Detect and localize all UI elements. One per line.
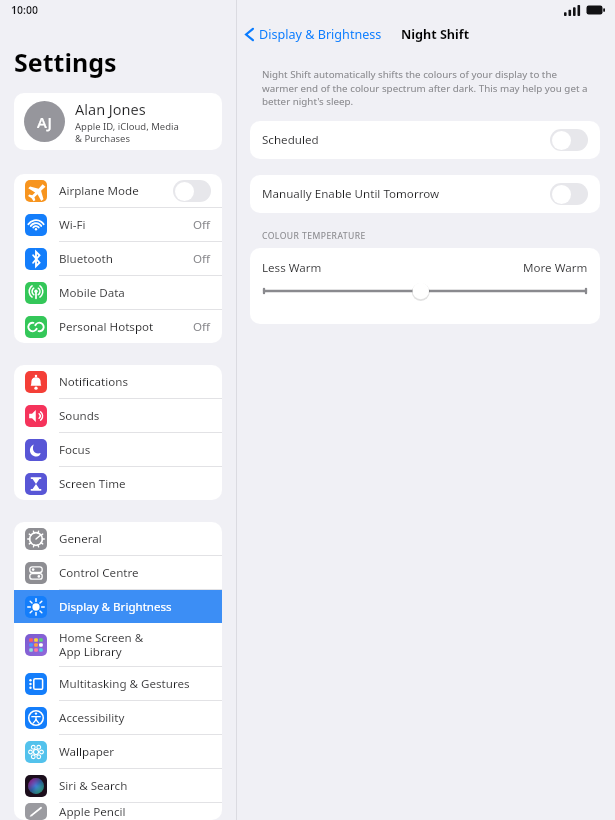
button[interactable]: Home Screen & App Library: [14, 623, 222, 666]
staticText: Off: [193, 251, 211, 267]
staticText: Scheduled: [262, 132, 550, 148]
button[interactable]: Sounds: [14, 399, 222, 432]
staticText: Screen Time: [59, 476, 211, 492]
staticText: Less Warm: [262, 260, 322, 276]
staticText: Alan Jones: [75, 99, 146, 119]
button[interactable]: Notifications: [14, 365, 222, 398]
staticText: More Warm: [523, 260, 588, 276]
button[interactable]: Multitasking & Gestures: [14, 667, 222, 700]
staticText: Wallpaper: [59, 744, 211, 760]
button[interactable]: Control Centre: [14, 556, 222, 589]
staticText: Control Centre: [59, 565, 211, 581]
button[interactable]: Focus: [14, 433, 222, 466]
staticText: Home Screen & App Library: [59, 630, 211, 659]
staticText: Notifications: [59, 374, 211, 390]
staticText: Off: [193, 217, 211, 233]
staticText: Mobile Data: [59, 285, 211, 301]
button[interactable]: Scheduled toggle: [550, 129, 588, 151]
button[interactable]: Apple Pencil: [14, 803, 222, 820]
button[interactable]: Bluetooth: [14, 242, 222, 275]
staticText: Off: [193, 319, 211, 335]
staticText: Personal Hotspot: [59, 319, 193, 335]
staticText: General: [59, 531, 211, 547]
button[interactable]: Airplane Mode: [14, 174, 222, 207]
staticText: Wi-Fi: [59, 217, 193, 233]
staticText: Apple ID, iCloud, Media & Purchases: [75, 120, 179, 145]
staticText: Focus: [59, 442, 211, 458]
staticText: 10:00: [11, 3, 38, 17]
button[interactable]: Wi-Fi: [14, 208, 222, 241]
button[interactable]: Screen Time: [14, 467, 222, 500]
staticText: Display & Brightness: [259, 26, 382, 43]
staticText: Siri & Search: [59, 778, 211, 794]
staticText: Bluetooth: [59, 251, 193, 267]
button[interactable]: Colour temperature slider: [262, 283, 588, 299]
button[interactable]: Wallpaper: [14, 735, 222, 768]
staticText: Apple Pencil: [59, 804, 211, 820]
staticText: Airplane Mode: [59, 183, 173, 199]
button[interactable]: Manually Enable Until Tomorrow toggle: [550, 183, 588, 205]
button[interactable]: AJ: [14, 93, 222, 150]
staticText: Night Shift automatically shifts the col…: [262, 68, 591, 107]
staticText: Manually Enable Until Tomorrow: [262, 186, 550, 202]
button[interactable]: Siri & Search: [14, 769, 222, 802]
staticText: Display & Brightness: [59, 599, 211, 615]
staticText: Settings: [14, 45, 117, 79]
button[interactable]: Manually Enable Until Tomorrow: [250, 175, 600, 213]
staticText: Multitasking & Gestures: [59, 676, 211, 692]
staticText: Night Shift: [401, 26, 470, 43]
button[interactable]: Accessibility: [14, 701, 222, 734]
button[interactable]: Mobile Data: [14, 276, 222, 309]
button[interactable]: Personal Hotspot: [14, 310, 222, 343]
staticText: AJ: [37, 112, 52, 132]
staticText: COLOUR TEMPERATURE: [262, 230, 366, 242]
button[interactable]: Display & Brightness: [14, 590, 222, 623]
staticText: Accessibility: [59, 710, 211, 726]
staticText: Sounds: [59, 408, 211, 424]
button[interactable]: Airplane Mode toggle: [173, 180, 211, 202]
button[interactable]: General: [14, 522, 222, 555]
button[interactable]: Display & Brightness: [237, 23, 388, 46]
button[interactable]: Scheduled: [250, 121, 600, 159]
